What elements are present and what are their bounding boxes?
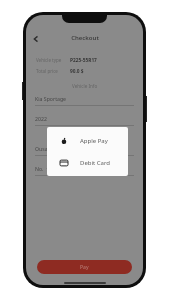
staticText: 2022 [35, 115, 47, 122]
button[interactable]: Debit Card [47, 156, 128, 169]
staticText: Checkout [71, 34, 99, 42]
staticText: Pay [80, 264, 89, 271]
staticText: Ousama [35, 145, 56, 152]
staticText: P225-55R17 [70, 57, 97, 64]
staticText: Vehicle type [36, 57, 70, 63]
button[interactable]: Pay [37, 260, 132, 274]
staticText: Apple Pay [80, 137, 108, 145]
button[interactable]: Apple Pay [47, 134, 128, 147]
staticText: Debit Card [80, 159, 110, 167]
button[interactable]: Back [29, 32, 42, 45]
staticText: Kia Sportage [35, 95, 67, 102]
staticText: 90.0 $ [70, 68, 84, 75]
staticText: Vehicle Info [72, 83, 98, 89]
staticText: Total price [36, 68, 70, 74]
staticText: No. +1 [35, 165, 53, 172]
